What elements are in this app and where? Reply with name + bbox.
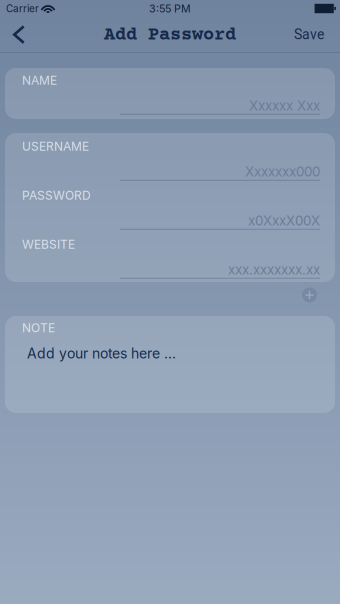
staticText: Xxxxxx Xxx	[249, 98, 320, 114]
staticText: x0XxxX00X	[248, 213, 320, 229]
staticText: Save	[294, 26, 324, 43]
staticText: WEBSITE	[22, 237, 75, 252]
staticText: xxx.xxxxxxx.xx	[228, 262, 320, 278]
staticText: Xxxxxxx000	[245, 164, 320, 180]
button[interactable]: Save	[286, 17, 332, 52]
staticText: Carrier	[6, 2, 39, 15]
button[interactable]: Back	[4, 17, 34, 52]
staticText: PASSWORD	[22, 188, 91, 203]
button[interactable]: Add field	[302, 287, 317, 302]
staticText: Add Password	[104, 25, 236, 46]
staticText: NOTE	[22, 321, 55, 335]
staticText: 3:55 PM	[149, 2, 191, 15]
staticText: NAME	[22, 73, 57, 88]
staticText: USERNAME	[22, 139, 89, 154]
staticText: Add your notes here ...	[27, 345, 176, 362]
